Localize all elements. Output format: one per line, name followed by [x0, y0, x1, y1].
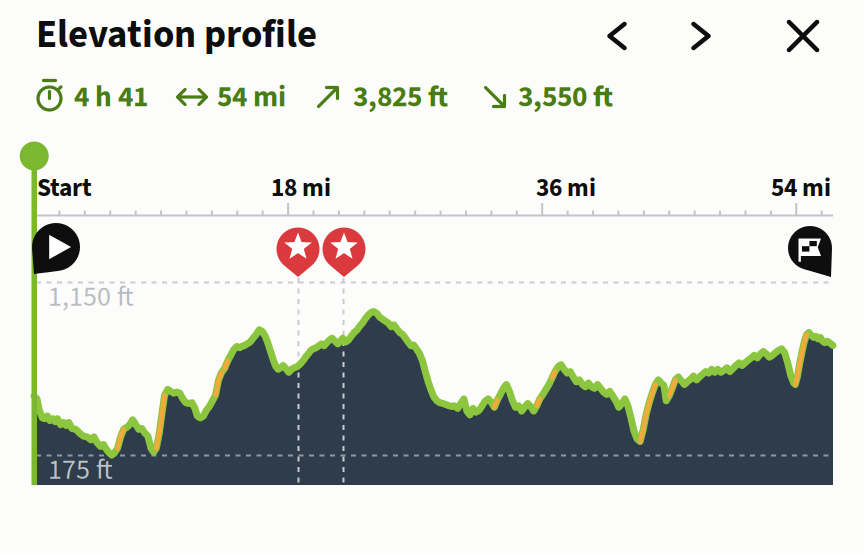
staticText: 54 mi: [217, 76, 286, 118]
staticText: 4 h 41: [74, 76, 148, 118]
staticText: 175 ft: [48, 450, 113, 490]
button[interactable]: Next: [671, 10, 730, 62]
staticText: 36 mi: [536, 170, 596, 206]
button[interactable]: Close: [773, 6, 833, 66]
staticText: Start: [37, 170, 92, 206]
staticText: 3,825 ft: [353, 76, 448, 118]
staticText: 54 mi: [771, 170, 831, 206]
staticText: 3,550 ft: [518, 76, 613, 118]
staticText: 18 mi: [271, 170, 331, 206]
staticText: Elevation profile: [36, 7, 317, 63]
button[interactable]: Previous: [587, 10, 646, 62]
staticText: 1,150 ft: [48, 277, 134, 317]
